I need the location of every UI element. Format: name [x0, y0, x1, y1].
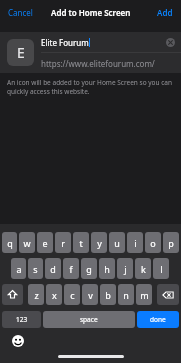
button[interactable]: o — [145, 232, 161, 253]
button[interactable]: n — [118, 284, 134, 305]
button[interactable]: e — [37, 232, 53, 253]
button[interactable]: q — [2, 232, 17, 253]
button[interactable]: l — [153, 258, 169, 279]
button[interactable]: Backspace — [157, 284, 179, 305]
staticText: s — [33, 263, 38, 275]
staticText: i — [134, 237, 137, 249]
button[interactable]: space — [43, 311, 135, 328]
button[interactable]: b — [100, 284, 116, 305]
button[interactable]: 123 — [2, 311, 41, 328]
staticText: e — [42, 237, 48, 249]
staticText: a — [16, 263, 22, 275]
button[interactable]: c — [64, 284, 80, 305]
button[interactable]: k — [135, 258, 151, 279]
staticText: u — [114, 237, 120, 249]
button[interactable]: Add — [149, 3, 181, 22]
button[interactable]: f — [63, 258, 79, 279]
button[interactable]: h — [99, 258, 115, 279]
button[interactable]: Emoji — [11, 334, 24, 347]
button[interactable]: Cancel — [0, 3, 41, 22]
staticText: https://www.elitefourum.com/ — [41, 58, 155, 69]
staticText: g — [86, 263, 92, 275]
button[interactable]: g — [81, 258, 97, 279]
staticText: q — [7, 237, 13, 249]
staticText: v — [88, 289, 93, 301]
staticText: space — [80, 315, 98, 324]
button[interactable]: w — [19, 232, 35, 253]
staticText: Cancel — [8, 7, 33, 18]
button[interactable]: s — [28, 258, 43, 279]
button[interactable]: Shift — [2, 284, 23, 305]
staticText: E — [17, 43, 25, 62]
staticText: o — [150, 237, 156, 249]
staticText: j — [124, 263, 127, 275]
staticText: c — [70, 289, 75, 301]
staticText: k — [141, 263, 146, 275]
staticText: l — [160, 263, 163, 275]
button[interactable]: y — [91, 232, 107, 253]
staticText: p — [168, 237, 174, 249]
staticText: t — [79, 237, 83, 249]
staticText: x — [52, 289, 57, 301]
staticText: d — [50, 263, 56, 275]
staticText: z — [34, 289, 39, 301]
button[interactable]: i — [127, 232, 143, 253]
staticText: Add to Home Screen — [51, 7, 131, 18]
button[interactable]: d — [45, 258, 61, 279]
button[interactable]: j — [117, 258, 133, 279]
staticText: r — [61, 237, 65, 249]
button[interactable]: done — [137, 311, 179, 328]
staticText: An icon will be added to your Home Scree… — [7, 78, 174, 96]
staticText: Elite Fourum — [41, 37, 89, 48]
button[interactable]: x — [46, 284, 62, 305]
button[interactable]: m — [136, 284, 152, 305]
staticText: f — [69, 263, 73, 275]
staticText: done — [150, 315, 166, 324]
button[interactable]: z — [28, 284, 44, 305]
button[interactable]: v — [82, 284, 98, 305]
button[interactable]: t — [73, 232, 89, 253]
staticText: n — [123, 289, 129, 301]
button[interactable]: p — [163, 232, 179, 253]
staticText: y — [97, 237, 102, 249]
button[interactable]: a — [11, 258, 26, 279]
button[interactable]: r — [55, 232, 71, 253]
staticText: m — [140, 289, 149, 301]
button[interactable]: u — [109, 232, 125, 253]
staticText: b — [105, 289, 111, 301]
staticText: h — [104, 263, 110, 275]
staticText: 123 — [16, 315, 28, 324]
button[interactable]: Clear text — [163, 35, 177, 49]
staticText: Add — [157, 7, 173, 18]
staticText: w — [23, 237, 31, 249]
